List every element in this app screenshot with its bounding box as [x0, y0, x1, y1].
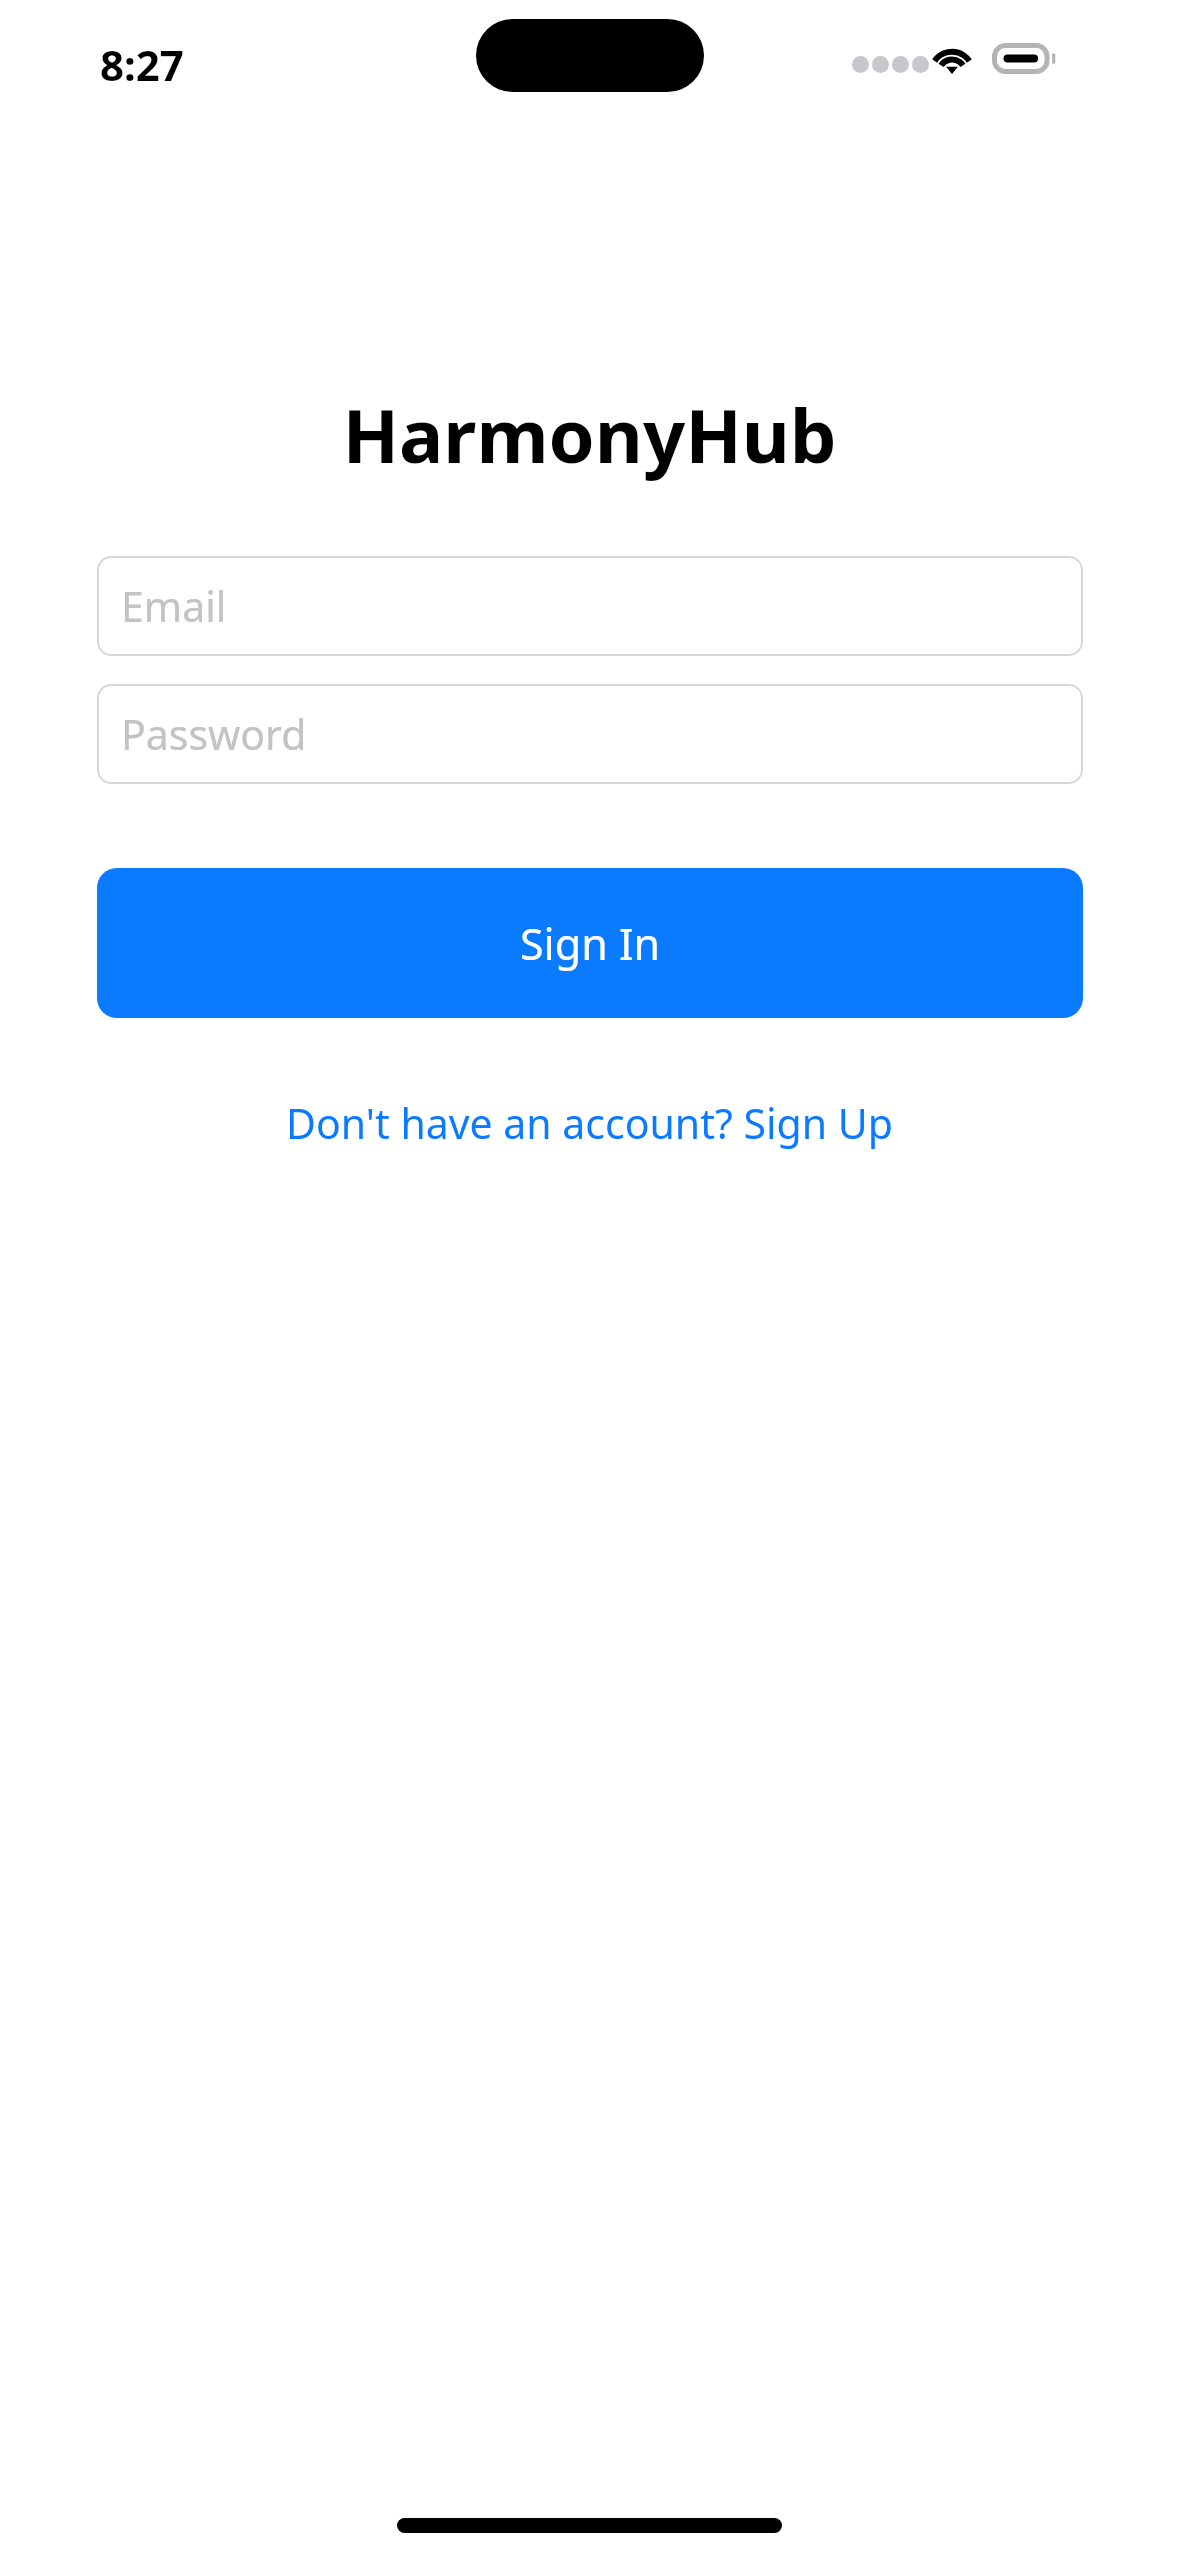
staticText: Email — [121, 578, 227, 634]
other: Wi-Fi — [929, 42, 975, 75]
staticText: Don't have an account? Sign Up — [286, 1095, 893, 1151]
staticText: Password — [121, 706, 307, 762]
button[interactable]: Email — [97, 556, 1083, 656]
staticText: Sign In — [520, 914, 661, 973]
other: Battery — [992, 43, 1056, 74]
button[interactable]: Don't have an account? Sign Up — [0, 1080, 1179, 1166]
staticText: HarmonyHub — [342, 384, 837, 485]
button[interactable]: Password — [97, 684, 1083, 784]
other: Cellular signal — [852, 48, 909, 70]
staticText: 8:27 — [100, 36, 184, 84]
button[interactable]: Sign In — [97, 868, 1083, 1018]
